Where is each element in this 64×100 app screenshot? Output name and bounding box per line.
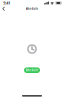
staticText: Schedule <box>25 68 38 72</box>
button[interactable]: Back <box>1 6 7 12</box>
button[interactable]: Schedule <box>24 67 40 73</box>
staticText: Schedule <box>25 7 38 10</box>
staticText: 9:41 <box>3 0 10 6</box>
